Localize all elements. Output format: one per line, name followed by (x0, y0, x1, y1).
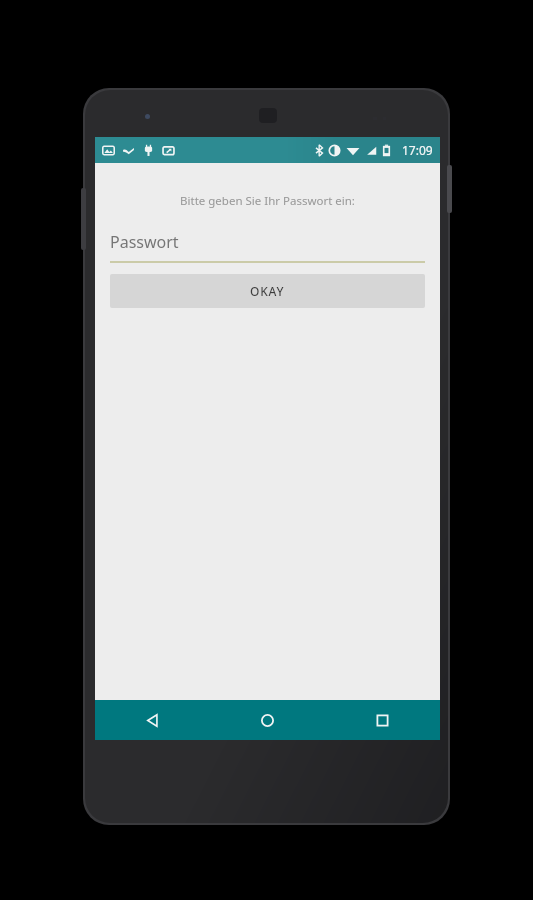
button[interactable]: Passwort (110, 231, 425, 263)
staticText: Passwort (110, 231, 179, 253)
button[interactable]: Recent apps (325, 700, 440, 740)
button[interactable]: OKAY (110, 274, 425, 308)
button[interactable]: Back (95, 700, 210, 740)
staticText: 17:09 (402, 142, 433, 158)
staticText: OKAY (250, 283, 285, 299)
button[interactable]: Home (210, 700, 325, 740)
staticText: Bitte geben Sie Ihr Passwort ein: (180, 193, 355, 209)
